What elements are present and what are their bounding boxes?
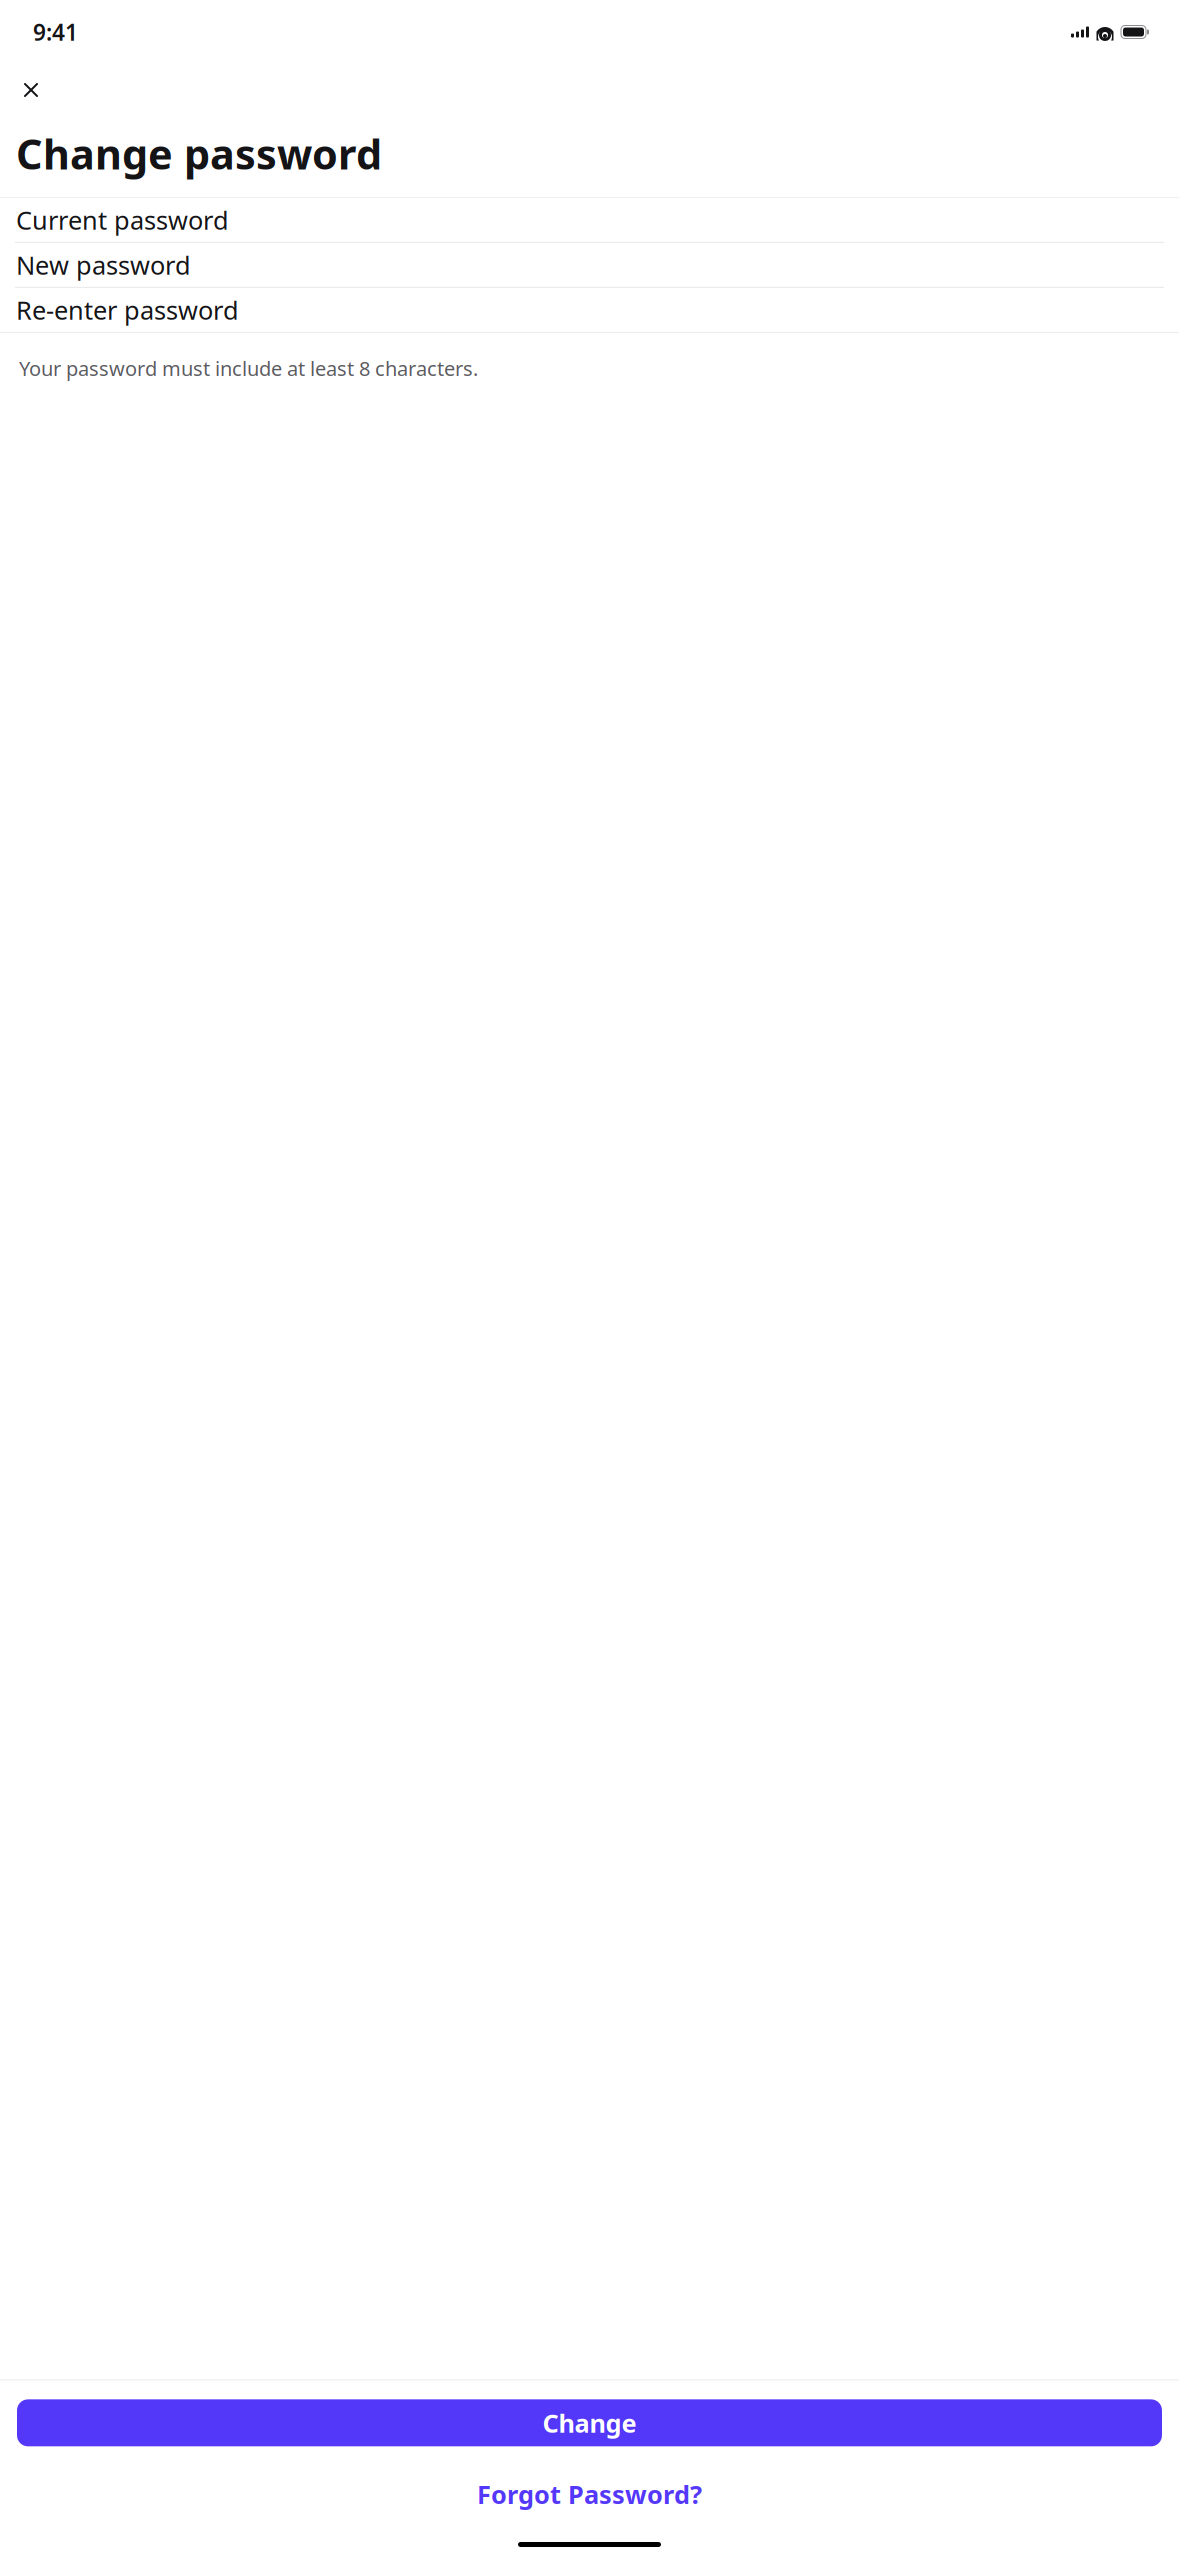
button[interactable]: New password [0, 243, 1179, 287]
button[interactable]: Re-enter password [0, 288, 1179, 332]
button[interactable]: Change [17, 2399, 1162, 2446]
staticText: Change [542, 2406, 636, 2440]
staticText: Change password [16, 126, 382, 181]
staticText: Your password must include at least 8 ch… [19, 355, 478, 381]
staticText: 9:41 [33, 17, 78, 47]
staticText: New password [16, 248, 191, 282]
button[interactable]: Forgot Password? [457, 2466, 722, 2522]
staticText: Current password [16, 203, 229, 237]
staticText: Forgot Password? [477, 2477, 702, 2511]
button[interactable]: Current password [0, 198, 1179, 242]
button[interactable]: Close [9, 68, 53, 112]
staticText: Re-enter password [16, 293, 239, 327]
